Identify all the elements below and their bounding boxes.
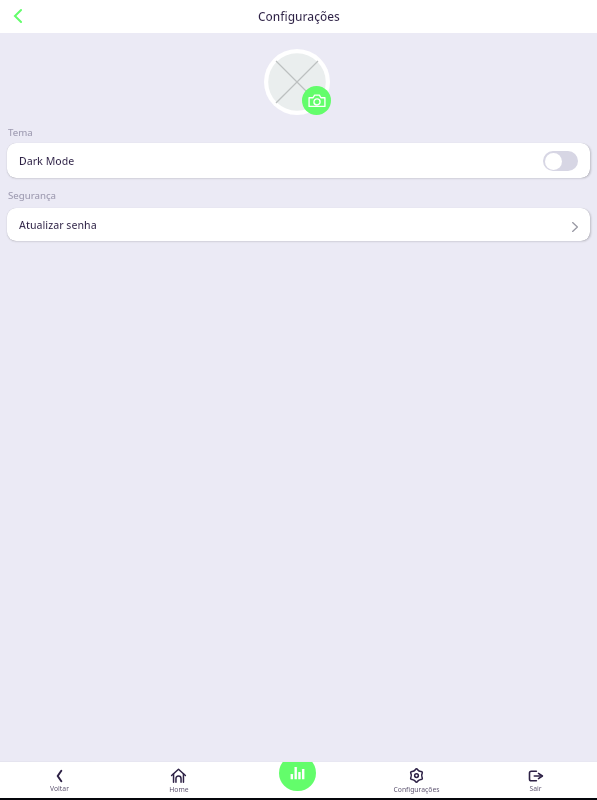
button[interactable]: Configurações: [357, 764, 476, 798]
staticText: Atualizar senha: [19, 218, 97, 232]
staticText: Segurança: [8, 189, 57, 202]
staticText: Dark Mode: [19, 154, 75, 168]
staticText: Configurações: [258, 8, 340, 24]
button[interactable]: Voltar: [0, 764, 119, 798]
button[interactable]: Sair: [476, 764, 595, 798]
staticText: Configurações: [393, 785, 440, 794]
button[interactable]: Voltar: [5, 3, 31, 29]
staticText: Tema: [8, 126, 33, 139]
button[interactable]: Alterar foto de perfil: [302, 86, 331, 115]
staticText: Home: [169, 785, 189, 794]
staticText: Voltar: [50, 784, 69, 793]
button[interactable]: Atualizar senha: [7, 208, 590, 241]
staticText: Sair: [529, 784, 542, 793]
button[interactable]: Estatísticas: [279, 762, 316, 791]
button[interactable]: Dark Mode: [7, 143, 590, 178]
button[interactable]: Home: [119, 764, 238, 798]
